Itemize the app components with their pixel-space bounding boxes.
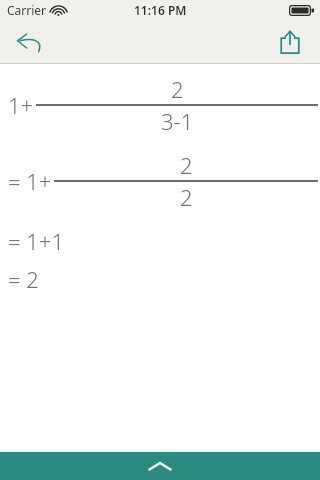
button[interactable]: Expand keyboard xyxy=(0,452,320,480)
staticText: 1+ xyxy=(8,90,34,120)
staticText: 11:16 PM xyxy=(134,2,187,18)
staticText: 2 xyxy=(180,150,193,180)
button[interactable]: Undo xyxy=(10,22,50,62)
staticText: 2 xyxy=(180,182,193,212)
staticText: 3-1 xyxy=(161,106,194,136)
staticText: = 1+1 xyxy=(8,226,64,256)
button[interactable]: Share xyxy=(270,22,310,62)
staticText: = 1+ xyxy=(8,166,52,196)
staticText: = 2 xyxy=(8,264,39,294)
staticText: 2 xyxy=(171,74,184,104)
staticText: Carrier xyxy=(7,2,47,18)
